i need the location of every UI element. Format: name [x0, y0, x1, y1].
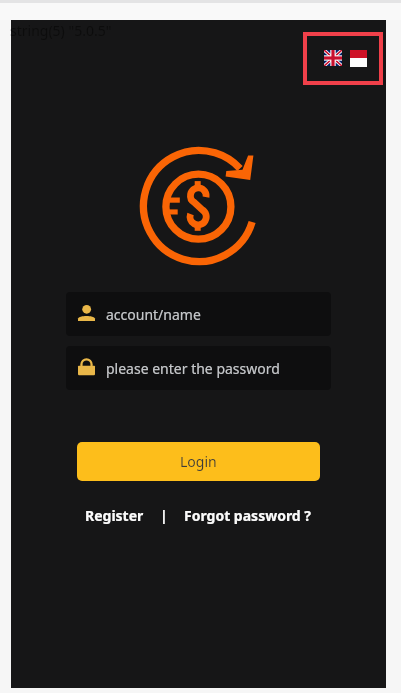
staticText: account/name — [106, 305, 201, 324]
staticText: please enter the password — [106, 359, 280, 378]
staticText: string(5) "5.0.5" — [10, 21, 112, 40]
staticText: Login — [180, 452, 217, 471]
button[interactable]: Select language — [303, 32, 383, 85]
button[interactable]: Forgot password ? — [184, 506, 312, 525]
button[interactable]: Register — [85, 506, 144, 525]
staticText: | — [160, 506, 168, 525]
button[interactable]: please enter the password — [66, 346, 331, 390]
button[interactable]: Login — [77, 442, 320, 481]
button[interactable]: account/name — [66, 292, 331, 336]
